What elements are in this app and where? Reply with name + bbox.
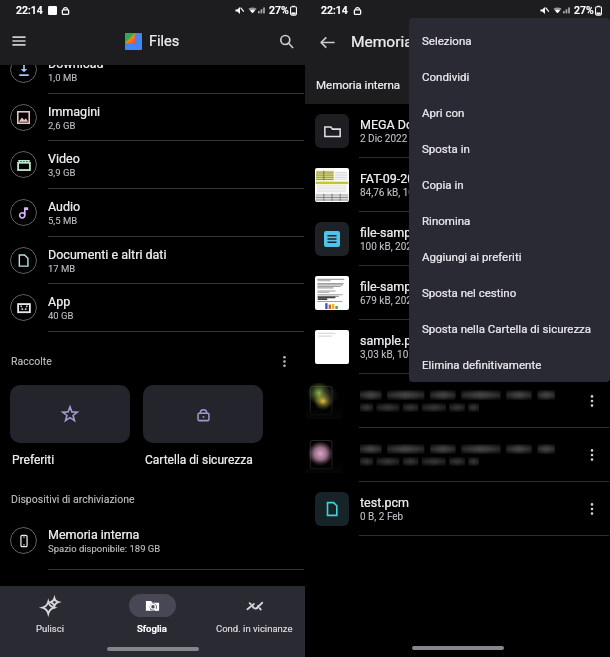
staticText: Elimina definitivamente <box>422 358 542 371</box>
staticText: Cond. in vicinanze <box>216 623 293 634</box>
button[interactable]: Audio <box>0 189 305 237</box>
staticText: 17 MB <box>48 263 76 274</box>
staticText: Pulisci <box>36 623 65 634</box>
staticText: 5,5 MB <box>48 215 78 226</box>
staticText: Sfoglia <box>137 623 167 634</box>
staticText: MEGA Documenti <box>360 117 459 132</box>
staticText: FAT-09-2021.xlsx <box>360 171 454 186</box>
staticText: Immagini <box>48 104 101 119</box>
staticText: Cartella di sicurezza <box>145 453 253 467</box>
staticText: Aggiungi ai preferiti <box>422 250 522 263</box>
staticText: 27% <box>269 4 289 16</box>
staticText: 22:14 <box>16 4 43 16</box>
staticText: Dispositivi di archiviazione <box>11 493 135 505</box>
staticText: 3,9 GB <box>48 167 76 178</box>
staticText: 22:14 <box>321 4 348 16</box>
button[interactable]: Sfoglia <box>101 586 203 641</box>
button[interactable]: FAT-09-2021.xlsx <box>305 158 610 212</box>
button[interactable]: Memoria interna <box>0 518 305 562</box>
staticText: Raccolte <box>11 355 52 367</box>
button[interactable]: test.pcm <box>305 482 610 536</box>
staticText: Rinomina <box>422 214 471 227</box>
staticText: Video <box>48 151 80 166</box>
staticText: Documenti e altri dati <box>48 247 167 262</box>
staticText: 40 GB <box>48 310 74 321</box>
button[interactable]: Indietro <box>311 26 343 58</box>
button[interactable]: Apri con <box>409 94 610 130</box>
button[interactable]: sample.png <box>305 320 610 374</box>
button[interactable]: Seleziona <box>409 22 610 58</box>
staticText: 2,6 GB <box>48 120 76 131</box>
staticText: Sposta in <box>422 142 470 155</box>
button[interactable]: Altre opzioni <box>577 386 607 416</box>
staticText: Audio <box>48 199 81 214</box>
button[interactable]: file-sample_100kB.doc <box>305 212 610 266</box>
button[interactable]: Rinomina <box>409 202 610 238</box>
staticText: sample.png <box>360 333 426 348</box>
staticText: Condividi <box>422 70 470 83</box>
staticText: App <box>48 294 71 309</box>
staticText: file-sample_1MB.pdf <box>360 279 475 294</box>
staticText: Download <box>48 56 104 71</box>
staticText: 1,0 MB <box>48 72 78 83</box>
button[interactable]: Altre opzioni <box>305 428 610 482</box>
staticText: Sposta nel cestino <box>422 286 517 299</box>
button[interactable]: Download <box>0 46 305 94</box>
button[interactable]: Video <box>0 141 305 189</box>
button[interactable]: Sposta in <box>409 130 610 166</box>
button[interactable] <box>143 385 263 443</box>
button[interactable]: Altre opzioni <box>577 494 607 524</box>
button[interactable]: Sposta nella Cartella di sicurezza <box>409 310 610 346</box>
button[interactable]: Immagini <box>0 94 305 141</box>
button[interactable]: Altre opzioni <box>305 374 610 428</box>
staticText: 84,76 kB, 10 Mar <box>360 187 434 199</box>
staticText: Spazio disponibile: 189 GB <box>48 543 161 554</box>
staticText: Memoria interna <box>48 527 140 542</box>
button[interactable]: Cerca <box>270 25 302 57</box>
button[interactable]: Pulisci <box>0 586 101 641</box>
button[interactable]: file-sample_1MB.pdf <box>305 266 610 320</box>
staticText: Memoria interna <box>351 33 465 51</box>
staticText: Apri con <box>422 106 465 119</box>
staticText: Seleziona <box>422 34 472 47</box>
button[interactable]: Cond. in vicinanze <box>203 586 305 641</box>
staticText: 2 Dic 2022 <box>360 133 408 145</box>
staticText: Copia in <box>422 178 464 191</box>
button[interactable]: Condividi <box>409 58 610 94</box>
button[interactable]: Aggiungi ai preferiti <box>409 238 610 274</box>
staticText: 100 kB, 2022 <box>360 241 418 253</box>
staticText: 679 kB, 2022 <box>360 295 418 307</box>
button[interactable]: Altre opzioni <box>577 440 607 470</box>
staticText: Memoria interna <box>316 78 401 91</box>
button[interactable]: Elimina definitivamente <box>409 346 610 382</box>
button[interactable]: Sposta nel cestino <box>409 274 610 310</box>
button[interactable] <box>10 385 130 443</box>
button[interactable]: MEGA Documenti <box>305 104 610 158</box>
staticText: 27% <box>574 4 594 16</box>
staticText: test.pcm <box>360 495 410 510</box>
staticText: Preferiti <box>12 453 55 467</box>
button[interactable]: Documenti e altri dati <box>0 237 305 284</box>
button[interactable]: Altre opzioni <box>577 332 607 362</box>
staticText: Sposta nella Cartella di sicurezza <box>422 322 592 335</box>
staticText: file-sample_100kB.doc <box>360 225 486 240</box>
staticText: 3,03 kB, 10 Gen <box>360 349 429 361</box>
button[interactable]: Altre opzioni <box>272 349 296 373</box>
staticText: Files <box>149 33 180 50</box>
button[interactable]: Menu <box>3 25 35 57</box>
staticText: 0 B, 2 Feb <box>360 511 404 523</box>
button[interactable]: App <box>0 284 305 332</box>
button[interactable]: Copia in <box>409 166 610 202</box>
